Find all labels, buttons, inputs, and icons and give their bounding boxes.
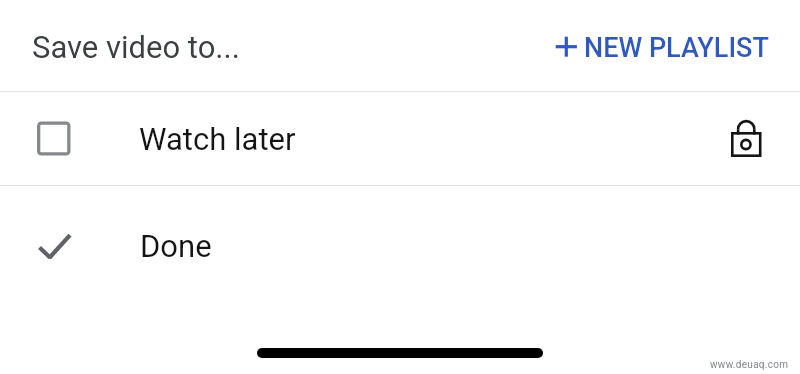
button[interactable]: Watch later checkbox bbox=[30, 114, 77, 161]
button[interactable]: NEW PLAYLIST bbox=[538, 10, 784, 82]
button[interactable]: Private playlist bbox=[716, 113, 776, 163]
button[interactable]: Done bbox=[0, 186, 800, 306]
staticText: www.deuaq.com bbox=[710, 359, 789, 371]
button[interactable]: Watch later bbox=[0, 92, 800, 185]
staticText: NEW PLAYLIST bbox=[584, 32, 769, 64]
staticText: Done bbox=[140, 228, 212, 264]
staticText: Watch later bbox=[139, 121, 296, 157]
staticText: Save video to... bbox=[32, 29, 240, 65]
button[interactable]: Done bbox=[30, 222, 78, 270]
